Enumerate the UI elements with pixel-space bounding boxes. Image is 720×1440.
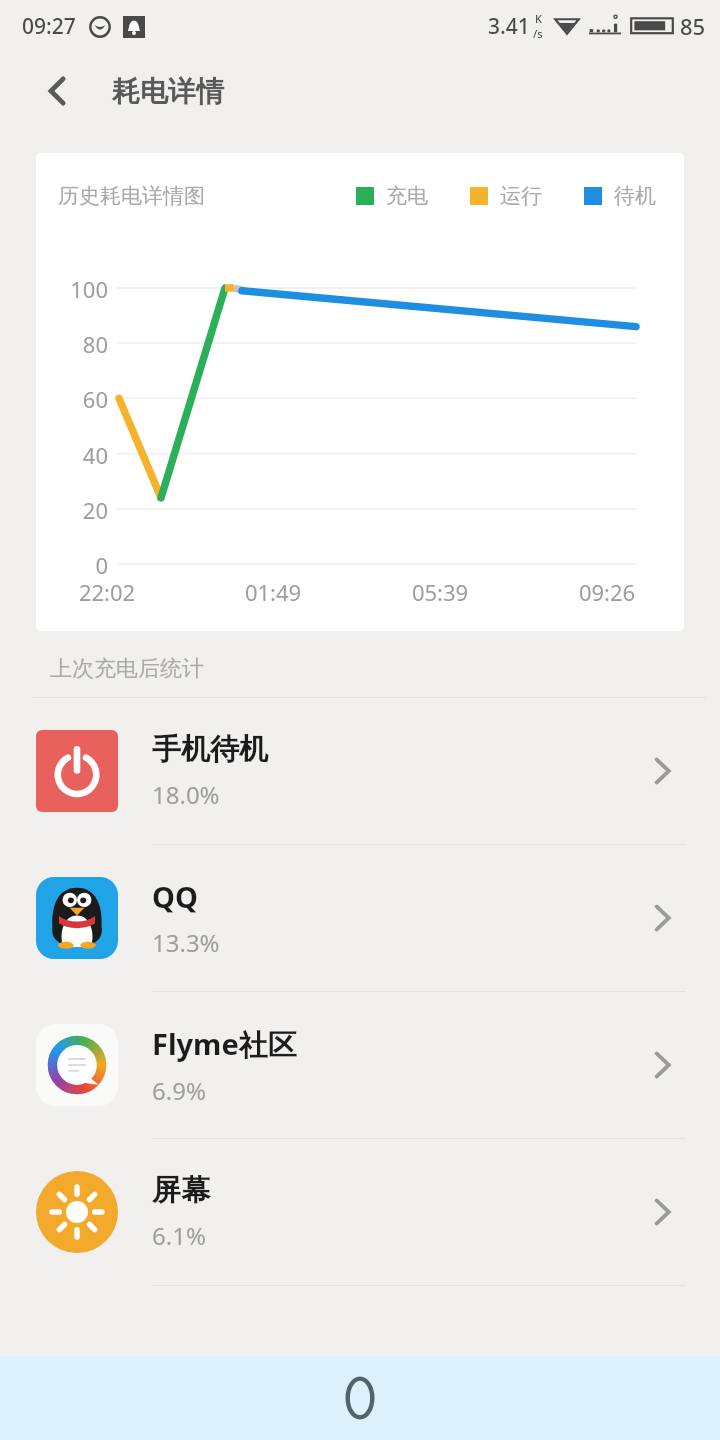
staticText: 手机待机 <box>152 731 268 768</box>
staticText: 01:49 <box>228 577 318 607</box>
staticText: 耗电详情 <box>112 74 224 109</box>
staticText: 屏幕 <box>152 1172 210 1209</box>
staticText: /s <box>533 26 543 41</box>
button[interactable]: Back <box>28 61 88 121</box>
staticText: 充电 <box>386 183 428 209</box>
staticText: 0 <box>46 550 108 580</box>
staticText: 05:39 <box>395 577 485 607</box>
button[interactable]: 屏幕 <box>0 1139 720 1285</box>
staticText: 待机 <box>614 183 656 209</box>
staticText: 上次充电后统计 <box>50 655 204 683</box>
staticText: 6.9% <box>152 1074 206 1107</box>
staticText: 40 <box>46 440 108 470</box>
staticText: 85 <box>680 11 706 41</box>
button[interactable]: 手机待机 <box>0 698 720 844</box>
staticText: 运行 <box>500 183 542 209</box>
staticText: 历史耗电详情图 <box>58 183 205 209</box>
staticText: 100 <box>46 274 108 304</box>
button[interactable]: Home <box>324 1362 396 1434</box>
staticText: 18.0% <box>152 778 220 811</box>
staticText: 09:26 <box>562 577 652 607</box>
staticText: Flyme社区 <box>152 1024 297 1064</box>
staticText: 13.3% <box>152 926 220 959</box>
button[interactable]: QQ <box>0 845 720 991</box>
staticText: 6.1% <box>152 1219 206 1252</box>
staticText: QQ <box>152 877 198 916</box>
staticText: 60 <box>46 384 108 414</box>
staticText: 09:27 <box>22 12 76 41</box>
staticText: 3.41 <box>488 12 530 41</box>
staticText: K <box>535 11 542 26</box>
staticText: 22:02 <box>62 577 152 607</box>
button[interactable]: Flyme社区 <box>0 992 720 1138</box>
staticText: 20 <box>46 495 108 525</box>
staticText: 80 <box>46 329 108 359</box>
